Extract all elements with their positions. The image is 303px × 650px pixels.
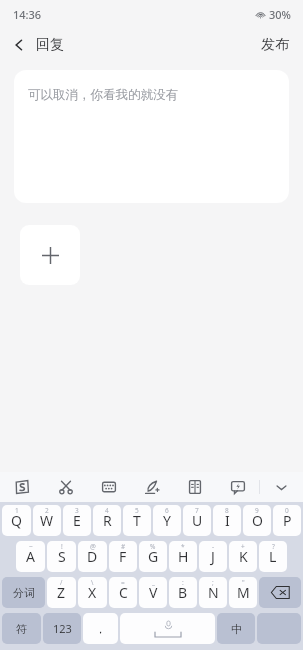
button[interactable]: Add image: [20, 225, 80, 285]
button[interactable]: 中: [217, 613, 255, 644]
button[interactable]: A: [16, 541, 45, 572]
button[interactable]: 发布: [247, 28, 303, 62]
staticText: ~: [29, 542, 33, 551]
staticText: ": [242, 578, 245, 587]
button[interactable]: 123: [43, 613, 81, 644]
button[interactable]: R: [93, 505, 121, 536]
button[interactable]: W: [33, 505, 61, 536]
button[interactable]: L: [259, 541, 287, 572]
staticText: 14:36: [13, 7, 42, 22]
staticText: %: [150, 542, 156, 551]
staticText: G: [148, 547, 159, 566]
button[interactable]: S: [47, 541, 76, 572]
button[interactable]: Backspace: [259, 577, 301, 608]
button[interactable]: M: [229, 577, 257, 608]
staticText: M: [237, 583, 250, 602]
staticText: W: [40, 511, 54, 530]
staticText: N: [208, 583, 219, 602]
button[interactable]: Sogou: [0, 472, 44, 502]
staticText: ?: [272, 542, 275, 551]
button[interactable]: I: [213, 505, 241, 536]
staticText: 7: [195, 506, 199, 515]
staticText: R: [103, 511, 112, 530]
staticText: X: [88, 583, 97, 602]
staticText: 可以取消，你看我的就没有: [28, 87, 178, 103]
staticText: T: [133, 511, 141, 530]
staticText: A: [26, 547, 35, 566]
staticText: ，: [95, 622, 106, 636]
staticText: /: [60, 578, 63, 587]
button[interactable]: E: [63, 505, 91, 536]
staticText: _: [152, 578, 155, 587]
staticText: 123: [53, 621, 72, 636]
staticText: 分词: [13, 586, 35, 600]
button[interactable]: Clipboard: [173, 472, 216, 502]
staticText: L: [269, 547, 277, 566]
staticText: =: [121, 578, 125, 587]
button[interactable]: ，: [83, 613, 118, 644]
button[interactable]: T: [123, 505, 151, 536]
staticText: \: [91, 578, 94, 587]
button[interactable]: 分词: [2, 577, 45, 608]
button[interactable]: Emoji: [87, 472, 130, 502]
button[interactable]: D: [78, 541, 107, 572]
button[interactable]: Quick phrase: [216, 472, 259, 502]
button[interactable]: Q: [2, 505, 31, 536]
staticText: *: [181, 542, 185, 551]
staticText: 5: [135, 506, 139, 515]
button[interactable]: F: [109, 541, 137, 572]
staticText: !: [61, 542, 63, 551]
button[interactable]: Enter: [257, 613, 301, 644]
button[interactable]: Cut: [44, 472, 87, 502]
staticText: @: [90, 542, 96, 551]
button[interactable]: 可以取消，你看我的就没有: [14, 70, 289, 203]
staticText: 中: [231, 622, 242, 636]
staticText: 回复: [36, 36, 64, 54]
staticText: K: [239, 547, 248, 566]
staticText: Z: [57, 583, 66, 602]
staticText: 2: [45, 506, 49, 515]
button[interactable]: H: [169, 541, 197, 572]
staticText: F: [119, 547, 127, 566]
button[interactable]: C: [109, 577, 137, 608]
staticText: J: [211, 547, 215, 566]
button[interactable]: N: [199, 577, 227, 608]
button[interactable]: O: [243, 505, 271, 536]
button[interactable]: Back: [0, 28, 74, 62]
staticText: U: [192, 511, 203, 530]
staticText: 4: [105, 506, 109, 515]
button[interactable]: Y: [153, 505, 181, 536]
staticText: E: [73, 511, 81, 530]
staticText: O: [252, 511, 263, 530]
staticText: 发布: [261, 36, 289, 54]
staticText: Q: [11, 511, 22, 530]
staticText: 1: [15, 506, 19, 515]
staticText: H: [178, 547, 189, 566]
button[interactable]: B: [169, 577, 197, 608]
staticText: S: [58, 547, 66, 566]
button[interactable]: Handwriting: [130, 472, 173, 502]
button[interactable]: X: [78, 577, 107, 608]
staticText: 3: [75, 506, 79, 515]
staticText: -: [212, 542, 215, 551]
staticText: 8: [225, 506, 229, 515]
button[interactable]: Space: [120, 613, 215, 644]
button[interactable]: 符: [2, 613, 41, 644]
button[interactable]: K: [229, 541, 257, 572]
staticText: Y: [163, 511, 171, 530]
button[interactable]: J: [199, 541, 227, 572]
staticText: 30%: [269, 7, 291, 22]
staticText: ;: [212, 578, 214, 587]
staticText: 0: [285, 506, 289, 515]
button[interactable]: U: [183, 505, 211, 536]
staticText: D: [87, 547, 98, 566]
button[interactable]: V: [139, 577, 167, 608]
button[interactable]: Hide keyboard: [260, 472, 303, 502]
staticText: V: [149, 583, 158, 602]
staticText: P: [283, 511, 292, 530]
staticText: I: [225, 511, 230, 530]
button[interactable]: G: [139, 541, 167, 572]
button[interactable]: P: [273, 505, 301, 536]
staticText: :: [182, 578, 184, 587]
button[interactable]: Z: [47, 577, 76, 608]
